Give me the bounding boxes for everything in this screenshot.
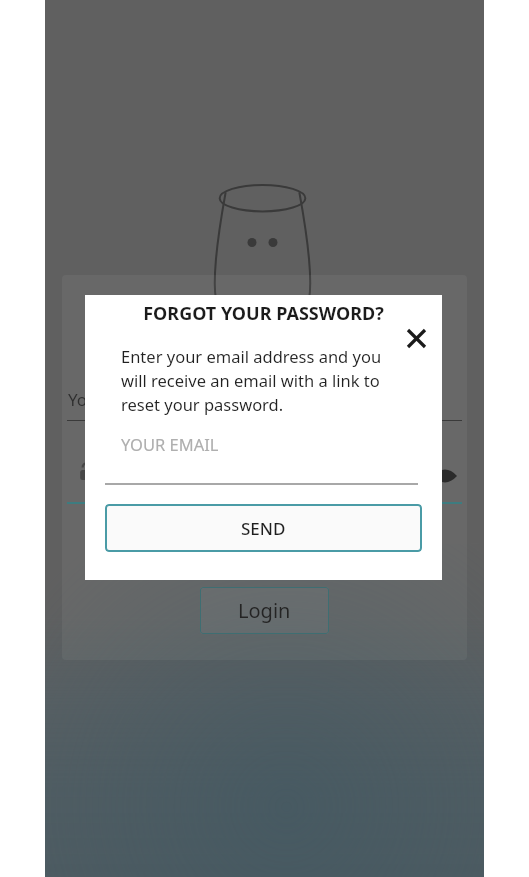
staticText: YOUR EMAIL (121, 433, 219, 455)
button[interactable]: Close (398, 320, 434, 356)
staticText: Login (238, 597, 291, 624)
button[interactable]: SEND (105, 504, 422, 552)
staticText: FORGOT YOUR PASSWORD? (85, 301, 442, 326)
staticText: SEND (241, 517, 286, 540)
button[interactable]: Login (200, 587, 329, 634)
other: Show password (433, 468, 457, 484)
staticText: Your ema (68, 388, 145, 411)
staticText: Enter your email address and you will re… (121, 345, 411, 416)
